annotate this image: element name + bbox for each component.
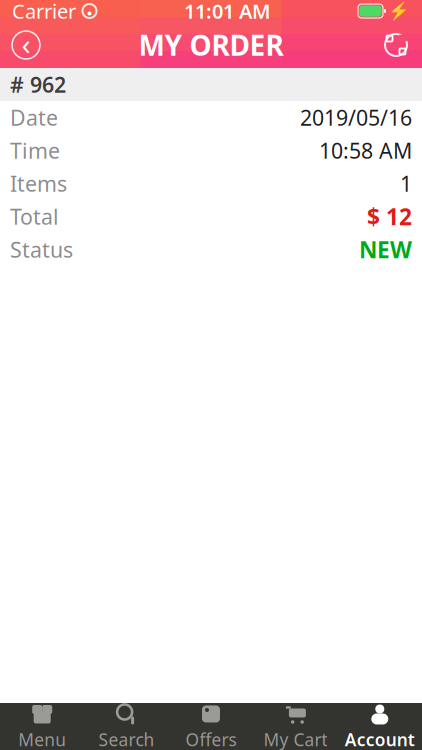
- staticText: My Cart: [263, 728, 327, 750]
- button[interactable]: Back: [4, 23, 48, 67]
- staticText: Date: [10, 103, 58, 132]
- staticText: Search: [99, 728, 155, 750]
- staticText: ⚡: [388, 1, 410, 21]
- staticText: MY ORDER: [138, 26, 283, 64]
- button[interactable]: Search: [84, 703, 169, 750]
- staticText: Items: [10, 169, 67, 198]
- staticText: $ 12: [367, 201, 412, 231]
- staticText: ‹: [21, 24, 30, 63]
- button[interactable]: Refresh: [374, 23, 418, 67]
- staticText: Carrier: [12, 0, 76, 24]
- staticText: NEW: [359, 234, 412, 264]
- staticText: Status: [10, 235, 73, 264]
- staticText: 2019/05/16: [300, 103, 412, 132]
- staticText: # 962: [10, 70, 66, 99]
- button[interactable]: My Cart: [253, 703, 338, 750]
- staticText: Time: [10, 136, 60, 165]
- staticText: Account: [345, 728, 415, 750]
- button[interactable]: Offers: [169, 703, 253, 750]
- staticText: 11:01 AM: [184, 0, 271, 24]
- button[interactable]: Menu: [0, 703, 84, 750]
- staticText: 10:58 AM: [319, 136, 412, 165]
- staticText: Menu: [18, 728, 66, 750]
- staticText: Offers: [185, 728, 236, 750]
- staticText: Total: [10, 202, 59, 231]
- button[interactable]: Account: [338, 703, 422, 750]
- staticText: 1: [400, 169, 412, 198]
